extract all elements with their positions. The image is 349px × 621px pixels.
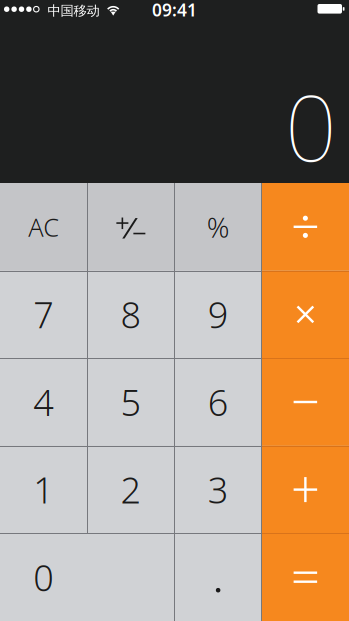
button[interactable]: Decimal point	[174, 533, 262, 621]
staticText: 0	[285, 66, 337, 186]
button[interactable]: %	[174, 183, 262, 271]
staticText: 2	[120, 466, 141, 513]
staticText: 4	[33, 378, 54, 426]
button[interactable]: AC	[0, 183, 87, 271]
staticText: 1	[33, 466, 54, 513]
staticText: AC	[28, 210, 59, 244]
button[interactable]: 8	[87, 271, 174, 358]
button[interactable]: Multiply	[262, 271, 349, 358]
button[interactable]: Equals	[262, 533, 349, 621]
button[interactable]: 6	[174, 358, 262, 446]
button[interactable]: 2	[87, 446, 174, 533]
button[interactable]: Subtract	[262, 358, 349, 446]
staticText: 7	[33, 290, 54, 338]
button[interactable]: 5	[87, 358, 174, 446]
button[interactable]: 4	[0, 358, 87, 446]
staticText: 中国移动	[47, 3, 99, 19]
button[interactable]: Divide	[262, 183, 349, 271]
button[interactable]: 7	[0, 271, 87, 358]
staticText: 3	[208, 466, 229, 513]
staticText: 8	[120, 290, 141, 338]
staticText: 6	[208, 378, 229, 426]
button[interactable]: 3	[174, 446, 262, 533]
staticText: %	[207, 208, 230, 245]
button[interactable]: Add	[262, 446, 349, 533]
staticText: 0	[33, 553, 54, 601]
button[interactable]: Plus minus	[87, 183, 174, 271]
staticText: 09:41	[152, 0, 197, 21]
button[interactable]: 0	[0, 533, 174, 621]
staticText: 9	[208, 290, 229, 338]
button[interactable]: 9	[174, 271, 262, 358]
button[interactable]: 1	[0, 446, 87, 533]
staticText: 5	[120, 378, 141, 426]
